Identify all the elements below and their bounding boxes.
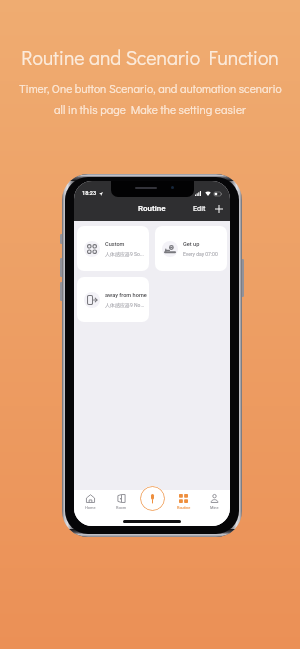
button[interactable]: Routine: [168, 490, 199, 514]
staticText: Routine and Scenario Function: [21, 45, 279, 71]
staticText: Home: [85, 505, 96, 510]
staticText: Edit: [193, 204, 206, 213]
staticText: 人体感应器9 So...: [105, 251, 144, 257]
staticText: Routine: [138, 204, 166, 213]
staticText: Routine: [177, 505, 191, 510]
button[interactable]: Edit: [191, 202, 208, 215]
button[interactable]: Custom: [77, 226, 149, 271]
staticText: all in this page Make the setting easier: [54, 102, 246, 117]
staticText: 人体感应器9 No...: [105, 302, 145, 308]
button[interactable]: Mine: [199, 490, 230, 514]
staticText: away from home: [105, 292, 147, 299]
staticText: Mine: [210, 505, 219, 510]
staticText: Get up: [183, 241, 200, 248]
staticText: Custom: [105, 241, 125, 248]
button[interactable]: Room: [106, 490, 137, 514]
staticText: 18:23: [82, 190, 97, 197]
button[interactable]: Voice assistant: [140, 486, 165, 511]
button[interactable]: Add scenario: [213, 203, 225, 215]
button[interactable]: Home: [74, 490, 106, 514]
staticText: Room: [116, 505, 127, 510]
button[interactable]: Get up: [155, 226, 227, 271]
staticText: Every day 07:00: [183, 251, 218, 257]
staticText: Timer, One button Scenario, and automati…: [19, 81, 282, 96]
button[interactable]: away from home: [77, 277, 149, 322]
